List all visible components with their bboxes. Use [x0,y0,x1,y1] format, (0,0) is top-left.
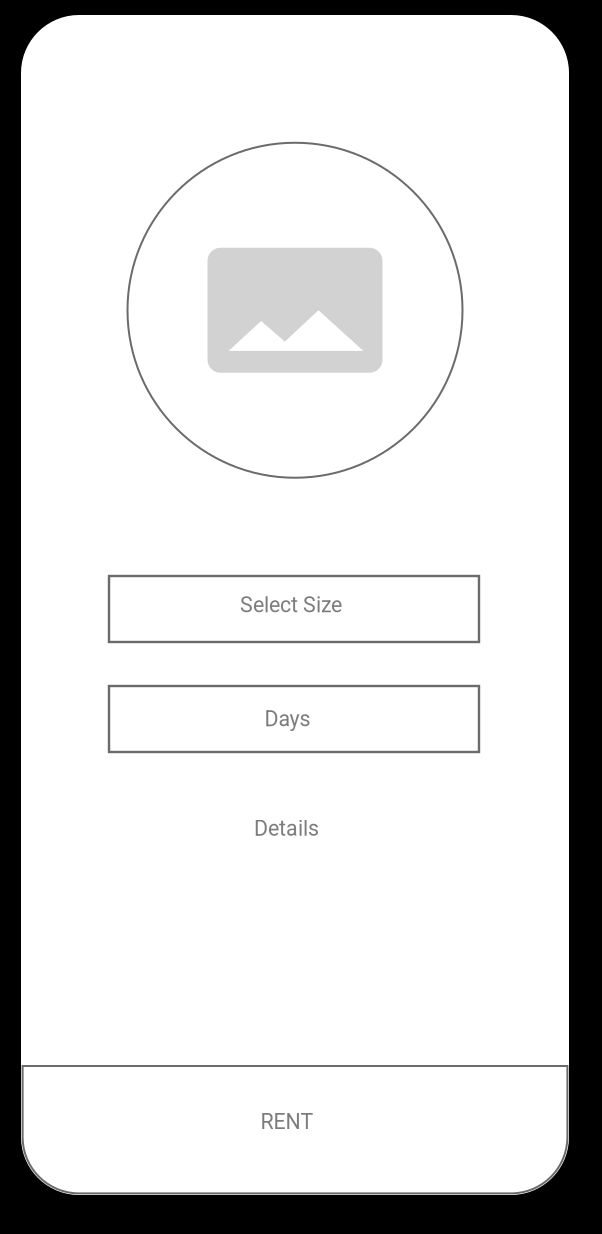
staticText: RENT [260,1109,313,1134]
button[interactable]: Days [109,686,479,752]
staticText: Days [264,706,310,731]
staticText: Select Size [240,592,342,617]
button[interactable]: Product photo [127,143,462,478]
staticText: Details [254,816,319,841]
button[interactable]: RENT [23,1066,567,1193]
button[interactable]: Select Size [109,576,479,642]
